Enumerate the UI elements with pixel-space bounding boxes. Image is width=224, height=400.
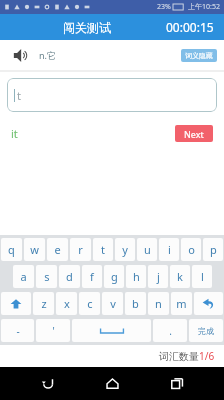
staticText: n xyxy=(155,296,162,311)
staticText: v xyxy=(110,296,116,311)
staticText: n.它 xyxy=(39,49,56,61)
staticText: . xyxy=(169,324,172,338)
staticText: t xyxy=(17,88,21,103)
staticText: r xyxy=(78,242,83,257)
staticText: i xyxy=(168,242,171,257)
staticText: o xyxy=(188,242,195,257)
button[interactable]: u xyxy=(137,238,157,261)
button[interactable]: i xyxy=(159,238,179,261)
button[interactable]: a xyxy=(13,265,34,288)
button[interactable]: r xyxy=(70,238,91,261)
button[interactable]: t xyxy=(93,238,113,261)
button[interactable]: Home xyxy=(95,367,129,400)
staticText: z xyxy=(41,296,47,311)
button[interactable]: Shift xyxy=(1,292,31,315)
staticText: a xyxy=(20,269,27,284)
staticText: j xyxy=(157,269,160,284)
button[interactable]: v xyxy=(102,292,123,315)
staticText: b xyxy=(132,296,139,311)
staticText: ' xyxy=(52,324,55,338)
button[interactable]: c xyxy=(79,292,100,315)
staticText: - xyxy=(16,324,20,338)
button[interactable]: - xyxy=(1,319,34,342)
button[interactable]: z xyxy=(33,292,54,315)
button[interactable]: Next xyxy=(175,125,213,142)
staticText: 闯关测试 xyxy=(63,20,111,35)
staticText: 上午10:52 xyxy=(188,2,220,12)
button[interactable]: Back xyxy=(31,367,65,400)
button[interactable]: ' xyxy=(36,319,70,342)
staticText: t xyxy=(101,242,105,257)
staticText: e xyxy=(54,242,61,257)
staticText: x xyxy=(64,296,70,311)
button[interactable]: q xyxy=(1,238,22,261)
other: Backspace xyxy=(202,297,215,310)
staticText: d xyxy=(66,269,73,284)
button[interactable]: s xyxy=(36,265,57,288)
staticText: 词汇数量 xyxy=(159,350,199,363)
button[interactable]: Space xyxy=(72,319,151,342)
staticText: f xyxy=(90,269,94,284)
staticText: 词义隐藏 xyxy=(185,51,213,60)
staticText: w xyxy=(30,242,39,257)
button[interactable]: w xyxy=(24,238,45,261)
button[interactable]: k xyxy=(170,265,190,288)
staticText: k xyxy=(177,269,183,284)
button[interactable]: y xyxy=(115,238,135,261)
button[interactable]: x xyxy=(56,292,77,315)
other: Space xyxy=(99,327,125,335)
staticText: s xyxy=(44,269,50,284)
button[interactable]: m xyxy=(171,292,192,315)
button[interactable]: n xyxy=(148,292,169,315)
button[interactable]: Recent apps xyxy=(160,367,194,400)
staticText: h xyxy=(133,269,140,284)
staticText: Next xyxy=(184,128,204,139)
other: Shift xyxy=(10,298,22,310)
staticText: p xyxy=(210,242,217,257)
button[interactable]: b xyxy=(125,292,146,315)
button[interactable]: g xyxy=(104,265,124,288)
button[interactable]: Play pronunciation xyxy=(10,44,32,66)
staticText: c xyxy=(87,296,93,311)
button[interactable]: e xyxy=(47,238,68,261)
staticText: u xyxy=(144,242,151,257)
button[interactable]: t xyxy=(7,78,217,112)
button[interactable]: . xyxy=(153,319,187,342)
button[interactable]: p xyxy=(203,238,223,261)
staticText: m xyxy=(176,296,187,311)
staticText: 完成 xyxy=(198,326,214,336)
staticText: 23% xyxy=(157,2,171,12)
button[interactable]: d xyxy=(59,265,80,288)
button[interactable]: 词义隐藏 xyxy=(181,49,217,62)
staticText: 1/6 xyxy=(199,349,215,363)
button[interactable]: l xyxy=(192,265,212,288)
button[interactable]: f xyxy=(82,265,102,288)
button[interactable]: Backspace xyxy=(194,292,223,315)
staticText: l xyxy=(201,269,204,284)
button[interactable]: 完成 xyxy=(189,319,223,342)
staticText: q xyxy=(8,242,15,257)
staticText: g xyxy=(111,269,118,284)
button[interactable]: j xyxy=(148,265,168,288)
button[interactable]: o xyxy=(181,238,201,261)
staticText: 00:00:15 xyxy=(166,19,214,35)
staticText: y xyxy=(122,242,128,257)
button[interactable]: h xyxy=(126,265,146,288)
staticText: it xyxy=(11,126,18,141)
